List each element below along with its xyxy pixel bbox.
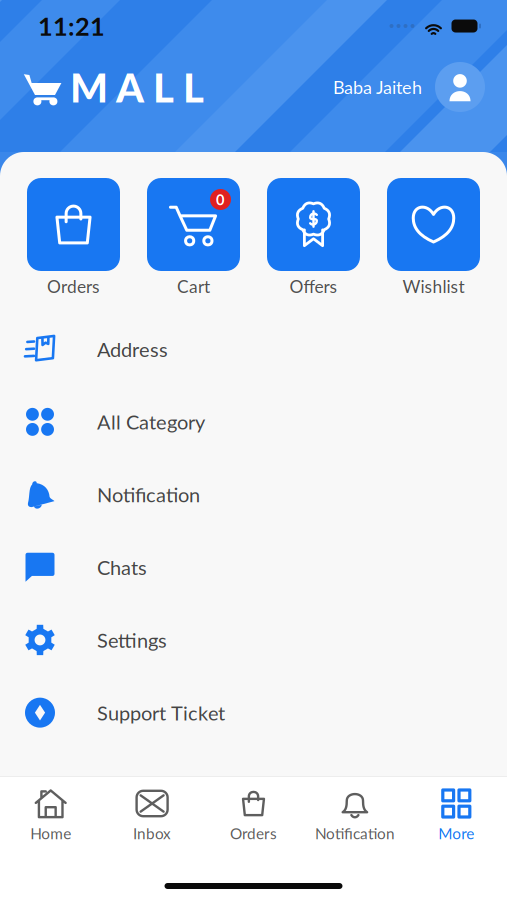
staticText: Baba Jaiteh bbox=[333, 76, 422, 98]
button[interactable]: Notification bbox=[304, 788, 406, 842]
button[interactable]: 0 bbox=[147, 178, 240, 297]
staticText: Chats bbox=[97, 555, 147, 579]
staticText: Wishlist bbox=[402, 276, 464, 297]
button[interactable]: Wishlist bbox=[387, 178, 480, 297]
button[interactable]: All Category bbox=[0, 385, 507, 458]
staticText: Address bbox=[97, 337, 168, 361]
button[interactable]: Notification bbox=[0, 458, 507, 531]
staticText: Orders bbox=[230, 824, 277, 842]
button[interactable]: Orders bbox=[203, 788, 304, 842]
staticText: Support Ticket bbox=[97, 701, 225, 725]
button[interactable]: Inbox bbox=[101, 788, 203, 842]
staticText: Inbox bbox=[133, 824, 171, 842]
staticText: Orders bbox=[47, 276, 100, 297]
button[interactable]: Chats bbox=[0, 531, 507, 604]
button[interactable]: Settings bbox=[0, 604, 507, 676]
staticText: Settings bbox=[97, 628, 167, 652]
button[interactable]: Orders bbox=[27, 178, 120, 297]
button[interactable]: Address bbox=[0, 313, 507, 385]
staticText: Offers bbox=[289, 276, 337, 297]
staticText: All Category bbox=[97, 410, 205, 434]
button[interactable]: Offers bbox=[267, 178, 360, 297]
button[interactable]: More bbox=[406, 788, 507, 842]
staticText: 11:21 bbox=[38, 11, 105, 41]
staticText: Home bbox=[30, 824, 71, 842]
staticText: More bbox=[438, 824, 474, 842]
staticText: M A L L bbox=[70, 63, 204, 111]
button[interactable]: Home bbox=[0, 788, 101, 842]
staticText: Cart bbox=[177, 276, 210, 297]
staticText: Notification bbox=[97, 482, 200, 506]
staticText: Notification bbox=[315, 824, 395, 842]
button[interactable]: Support Ticket bbox=[0, 676, 507, 749]
staticText: 0 bbox=[216, 191, 225, 208]
